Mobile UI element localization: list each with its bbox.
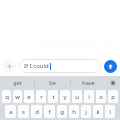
button[interactable]: r [36,90,46,103]
button[interactable]: q [2,90,11,103]
button[interactable]: be [35,76,70,89]
staticText: t [52,93,55,101]
staticText: s [22,108,25,116]
staticText: l [109,108,111,116]
button[interactable]: h [69,105,79,118]
button[interactable]: l [105,105,115,118]
button[interactable]: i [84,90,94,103]
staticText: y [63,93,67,101]
button[interactable]: o [96,90,106,103]
button[interactable]: k [93,105,103,118]
staticText: be [49,79,56,86]
staticText: i [88,93,90,101]
staticText: If I could [24,62,49,70]
button[interactable]: Add attachment [3,60,16,73]
staticText: o [99,93,103,101]
button[interactable]: a [5,105,16,118]
staticText: f [48,108,51,116]
staticText: get [13,79,22,86]
button[interactable]: g [57,105,67,118]
button[interactable]: d [31,105,42,118]
staticText: k [96,108,100,116]
button[interactable]: Keyboard options [106,76,120,89]
staticText: p [111,93,115,101]
button[interactable]: e [24,90,34,103]
staticText: h [72,108,76,116]
button[interactable]: u [72,90,82,103]
button[interactable]: f [44,105,55,118]
button[interactable]: s [18,105,29,118]
button[interactable]: t [48,90,58,103]
staticText: a [9,108,13,116]
staticText: q [5,93,9,101]
button[interactable]: j [81,105,91,118]
button[interactable]: y [60,90,70,103]
staticText: j [85,108,87,116]
staticText: d [35,108,39,116]
staticText: w [15,93,20,101]
staticText: e [27,93,31,101]
button[interactable]: get [0,76,34,89]
staticText: have [82,79,95,86]
staticText: g [60,108,64,116]
button[interactable]: have [71,76,106,89]
button[interactable]: w [13,90,22,103]
staticText: u [75,93,79,101]
button[interactable]: Send [104,60,117,73]
button[interactable]: If I could [19,59,101,73]
button[interactable]: p [108,90,118,103]
staticText: r [40,93,43,101]
